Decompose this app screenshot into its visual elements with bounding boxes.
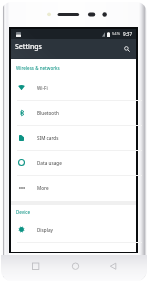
staticText: 54% [112, 31, 121, 37]
button[interactable]: Search [118, 39, 136, 59]
staticText: Data usage [37, 160, 62, 166]
staticText: Wi-Fi [37, 85, 48, 91]
button[interactable]: Wi-Fi [11, 76, 136, 101]
staticText: Display [37, 227, 53, 233]
staticText: 9:37 [123, 31, 133, 37]
button[interactable]: Data usage [11, 151, 136, 176]
button[interactable]: Display [11, 218, 136, 243]
staticText: SIM cards [37, 135, 59, 141]
button[interactable]: SIM cards [11, 126, 136, 151]
staticText: Bluetooth [37, 110, 59, 116]
staticText: Device [16, 209, 31, 215]
button[interactable]: Bluetooth [11, 101, 136, 126]
staticText: More [37, 185, 49, 191]
button[interactable]: More [11, 176, 136, 201]
staticText: Settings [15, 42, 42, 51]
staticText: Wireless & networks [16, 65, 60, 71]
